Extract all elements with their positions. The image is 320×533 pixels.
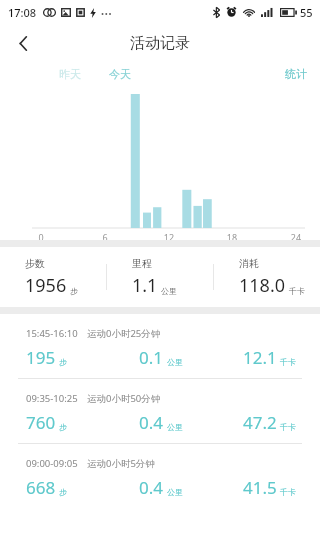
staticText: 118.0 [239, 273, 286, 298]
staticText: 公里 [167, 357, 183, 367]
staticText: 1.1 [132, 273, 158, 298]
staticText: 昨天 [59, 67, 81, 81]
staticText: 千卡 [289, 286, 305, 296]
button[interactable]: 消耗 [214, 247, 320, 307]
button[interactable]: 09:35-10:25 [0, 379, 320, 443]
staticText: 里程 [132, 257, 152, 270]
staticText: 09:00-09:05 [26, 457, 78, 470]
button[interactable]: Back [0, 24, 46, 62]
button[interactable]: 今天 [104, 65, 136, 83]
staticText: 55 [300, 5, 313, 20]
staticText: 47.2 [243, 411, 277, 434]
staticText: 0.4 [139, 411, 164, 434]
button[interactable]: 步数 [0, 247, 106, 307]
staticText: 18 [224, 231, 240, 243]
staticText: 12 [161, 231, 177, 243]
staticText: 运动0小时50分钟 [87, 392, 161, 405]
button[interactable]: 统计 [272, 65, 320, 83]
button[interactable]: 里程 [107, 247, 213, 307]
staticText: 公里 [167, 422, 183, 432]
staticText: 活动记录 [130, 34, 190, 53]
staticText: 千卡 [280, 487, 296, 497]
staticText: 1956 [25, 273, 67, 298]
staticText: 步数 [25, 257, 45, 270]
staticText: 统计 [285, 67, 307, 81]
staticText: 668 [26, 476, 56, 499]
button[interactable]: 昨天 [54, 65, 86, 83]
staticText: 17:08 [8, 5, 37, 20]
staticText: 步 [59, 487, 67, 497]
staticText: 0 [33, 231, 49, 243]
staticText: 760 [26, 411, 56, 434]
staticText: 12.1 [243, 346, 277, 369]
button[interactable]: 09:00-09:05 [0, 444, 320, 508]
staticText: 运动0小时5分钟 [87, 457, 155, 470]
staticText: 6 [97, 231, 113, 243]
staticText: 15:45-16:10 [26, 327, 78, 340]
staticText: 195 [26, 346, 56, 369]
staticText: 千卡 [280, 357, 296, 367]
staticText: 0.4 [139, 476, 164, 499]
staticText: 0.1 [139, 346, 164, 369]
staticText: 步 [59, 357, 67, 367]
staticText: 今天 [109, 67, 131, 81]
staticText: 运动0小时25分钟 [87, 327, 161, 340]
staticText: 千卡 [280, 422, 296, 432]
staticText: 公里 [167, 487, 183, 497]
staticText: 09:35-10:25 [26, 392, 78, 405]
staticText: 步 [59, 422, 67, 432]
staticText: 步 [70, 286, 78, 296]
staticText: 消耗 [239, 257, 259, 270]
button[interactable]: 15:45-16:10 [0, 314, 320, 378]
staticText: 24 [288, 231, 304, 243]
staticText: 41.5 [243, 476, 277, 499]
staticText: 公里 [161, 286, 177, 296]
